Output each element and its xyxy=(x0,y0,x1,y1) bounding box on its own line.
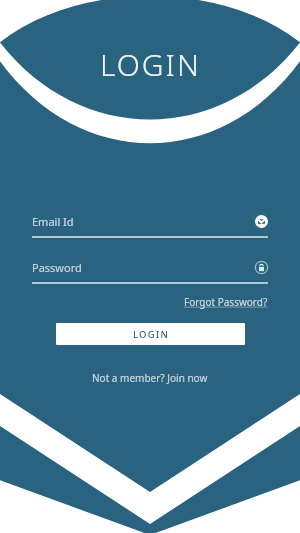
button[interactable]: Show password xyxy=(255,261,268,274)
staticText: Email Id xyxy=(32,214,74,229)
staticText: Not a member? Join now xyxy=(92,371,208,385)
staticText: Forgot Password? xyxy=(184,295,268,309)
staticText: LOGIN xyxy=(100,44,201,85)
staticText: Password xyxy=(32,260,82,275)
other: Email xyxy=(255,215,268,228)
button[interactable]: Forgot Password? xyxy=(184,295,268,309)
button[interactable]: LOGIN xyxy=(56,323,245,345)
button[interactable]: Password xyxy=(32,257,268,277)
staticText: LOGIN xyxy=(133,328,169,341)
button[interactable]: Email Id xyxy=(32,211,268,231)
button[interactable]: Not a member? Join now xyxy=(92,371,208,385)
